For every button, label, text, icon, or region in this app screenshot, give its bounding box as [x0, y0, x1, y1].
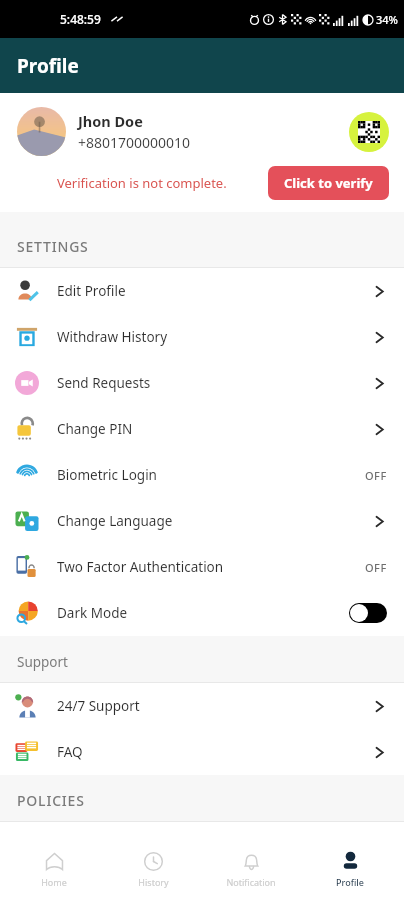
button[interactable]: History — [108, 844, 198, 894]
button[interactable]: Change PIN — [0, 406, 404, 452]
staticText: History — [138, 876, 169, 888]
staticText: POLICIES — [17, 791, 85, 810]
button[interactable]: Notification — [206, 844, 296, 894]
staticText: Send Requests — [57, 374, 372, 392]
staticText: FAQ — [57, 743, 372, 761]
staticText: Dark Mode — [57, 604, 349, 622]
staticText: Change PIN — [57, 420, 372, 438]
button[interactable]: Dark Mode — [0, 590, 404, 636]
staticText: 5:48:59 — [60, 11, 101, 27]
staticText: +8801700000010 — [78, 133, 191, 152]
staticText: SETTINGS — [17, 237, 89, 256]
staticText: Change Language — [57, 512, 372, 530]
staticText: Edit Profile — [57, 282, 372, 300]
button[interactable]: Withdraw History — [0, 314, 404, 360]
staticText: Profile — [336, 876, 364, 888]
button[interactable]: Click to verify — [268, 166, 389, 200]
button[interactable]: Change Language — [0, 498, 404, 544]
button[interactable]: Edit Profile — [0, 268, 404, 314]
button[interactable]: Show QR code — [349, 112, 389, 152]
staticText: OFF — [365, 560, 387, 575]
staticText: Notification — [226, 876, 276, 888]
staticText: OFF — [365, 468, 387, 483]
button[interactable]: 24/7 Support — [0, 683, 404, 729]
staticText: Biometric Login — [57, 466, 365, 484]
staticText: Jhon Doe — [78, 111, 143, 131]
staticText: Profile — [17, 53, 79, 79]
staticText: Two Factor Authentication — [57, 558, 365, 576]
staticText: Click to verify — [284, 174, 373, 192]
staticText: Home — [41, 876, 67, 888]
button[interactable]: Send Requests — [0, 360, 404, 406]
staticText: 24/7 Support — [57, 697, 372, 715]
button[interactable]: Dark mode toggle — [349, 603, 387, 623]
staticText: Support — [17, 653, 68, 671]
button[interactable]: Profile — [305, 844, 395, 894]
staticText: 34% — [376, 12, 398, 27]
button[interactable]: Biometric Login — [0, 452, 404, 498]
button[interactable]: Two Factor Authentication — [0, 544, 404, 590]
button[interactable]: Home — [9, 844, 99, 894]
staticText: Verification is not complete. — [57, 174, 268, 192]
staticText: Withdraw History — [57, 328, 372, 346]
button[interactable]: FAQ — [0, 729, 404, 775]
